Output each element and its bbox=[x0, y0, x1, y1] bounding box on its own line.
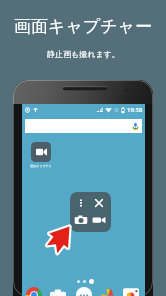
button[interactable]: 画面キャプチャ bbox=[29, 142, 53, 168]
button[interactable]: Google search bbox=[25, 119, 142, 133]
button[interactable]: Capture screenshot bbox=[74, 213, 88, 227]
button[interactable]: Close bbox=[92, 196, 106, 210]
button[interactable]: Chrome bbox=[26, 287, 42, 296]
staticText: 画面キャプチャ bbox=[30, 164, 52, 168]
button[interactable]: Gallery bbox=[123, 287, 139, 296]
button[interactable]: Photos bbox=[100, 287, 116, 296]
staticText: 19:58 bbox=[127, 106, 143, 114]
staticText: 画面キャプチャー bbox=[14, 16, 152, 37]
button[interactable]: More options bbox=[74, 196, 88, 210]
staticText: 静止画も撮れます。 bbox=[47, 49, 120, 59]
button[interactable]: Record video bbox=[92, 213, 106, 227]
button[interactable]: All apps bbox=[76, 287, 92, 296]
button[interactable]: Camera bbox=[50, 287, 66, 296]
